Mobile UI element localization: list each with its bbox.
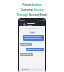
staticText: Private Archive: [2, 3, 62, 7]
staticText: Through Text and Email: [2, 13, 62, 17]
button[interactable]: [20, 43, 32, 46]
button[interactable]: [29, 31, 36, 34]
button[interactable]: [20, 53, 33, 56]
button[interactable]: [23, 35, 44, 41]
button[interactable]: Back: [19, 22, 45, 26]
other: Back: [20, 23, 22, 25]
staticText: Customer Service: [2, 8, 62, 12]
button[interactable]: [26, 48, 44, 51]
other: More options: [42, 23, 44, 25]
button[interactable]: [20, 68, 44, 71]
